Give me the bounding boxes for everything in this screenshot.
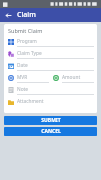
button[interactable]: Note <box>8 85 94 97</box>
button[interactable]: Amount <box>53 73 94 85</box>
staticText: Note <box>17 86 28 93</box>
staticText: Claim <box>17 10 36 20</box>
staticText: CANCEL <box>41 128 61 135</box>
button[interactable]: Program <box>8 37 94 49</box>
staticText: Submit Claim <box>8 27 43 34</box>
staticText: Program <box>17 38 37 45</box>
staticText: Amount <box>62 74 81 81</box>
staticText: Claim Type <box>17 50 42 57</box>
staticText: Attachment <box>17 98 44 105</box>
button[interactable]: Date <box>8 61 94 73</box>
button[interactable]: Back <box>3 10 13 20</box>
staticText: MVR <box>17 74 28 81</box>
staticText: SUBMIT <box>41 117 61 124</box>
staticText: Date <box>17 62 28 69</box>
button[interactable]: SUBMIT <box>4 116 97 125</box>
button[interactable]: Attachment <box>8 97 94 109</box>
button[interactable]: MVR <box>8 73 49 85</box>
button[interactable]: CANCEL <box>4 127 97 136</box>
button[interactable]: Claim Type <box>8 49 94 61</box>
